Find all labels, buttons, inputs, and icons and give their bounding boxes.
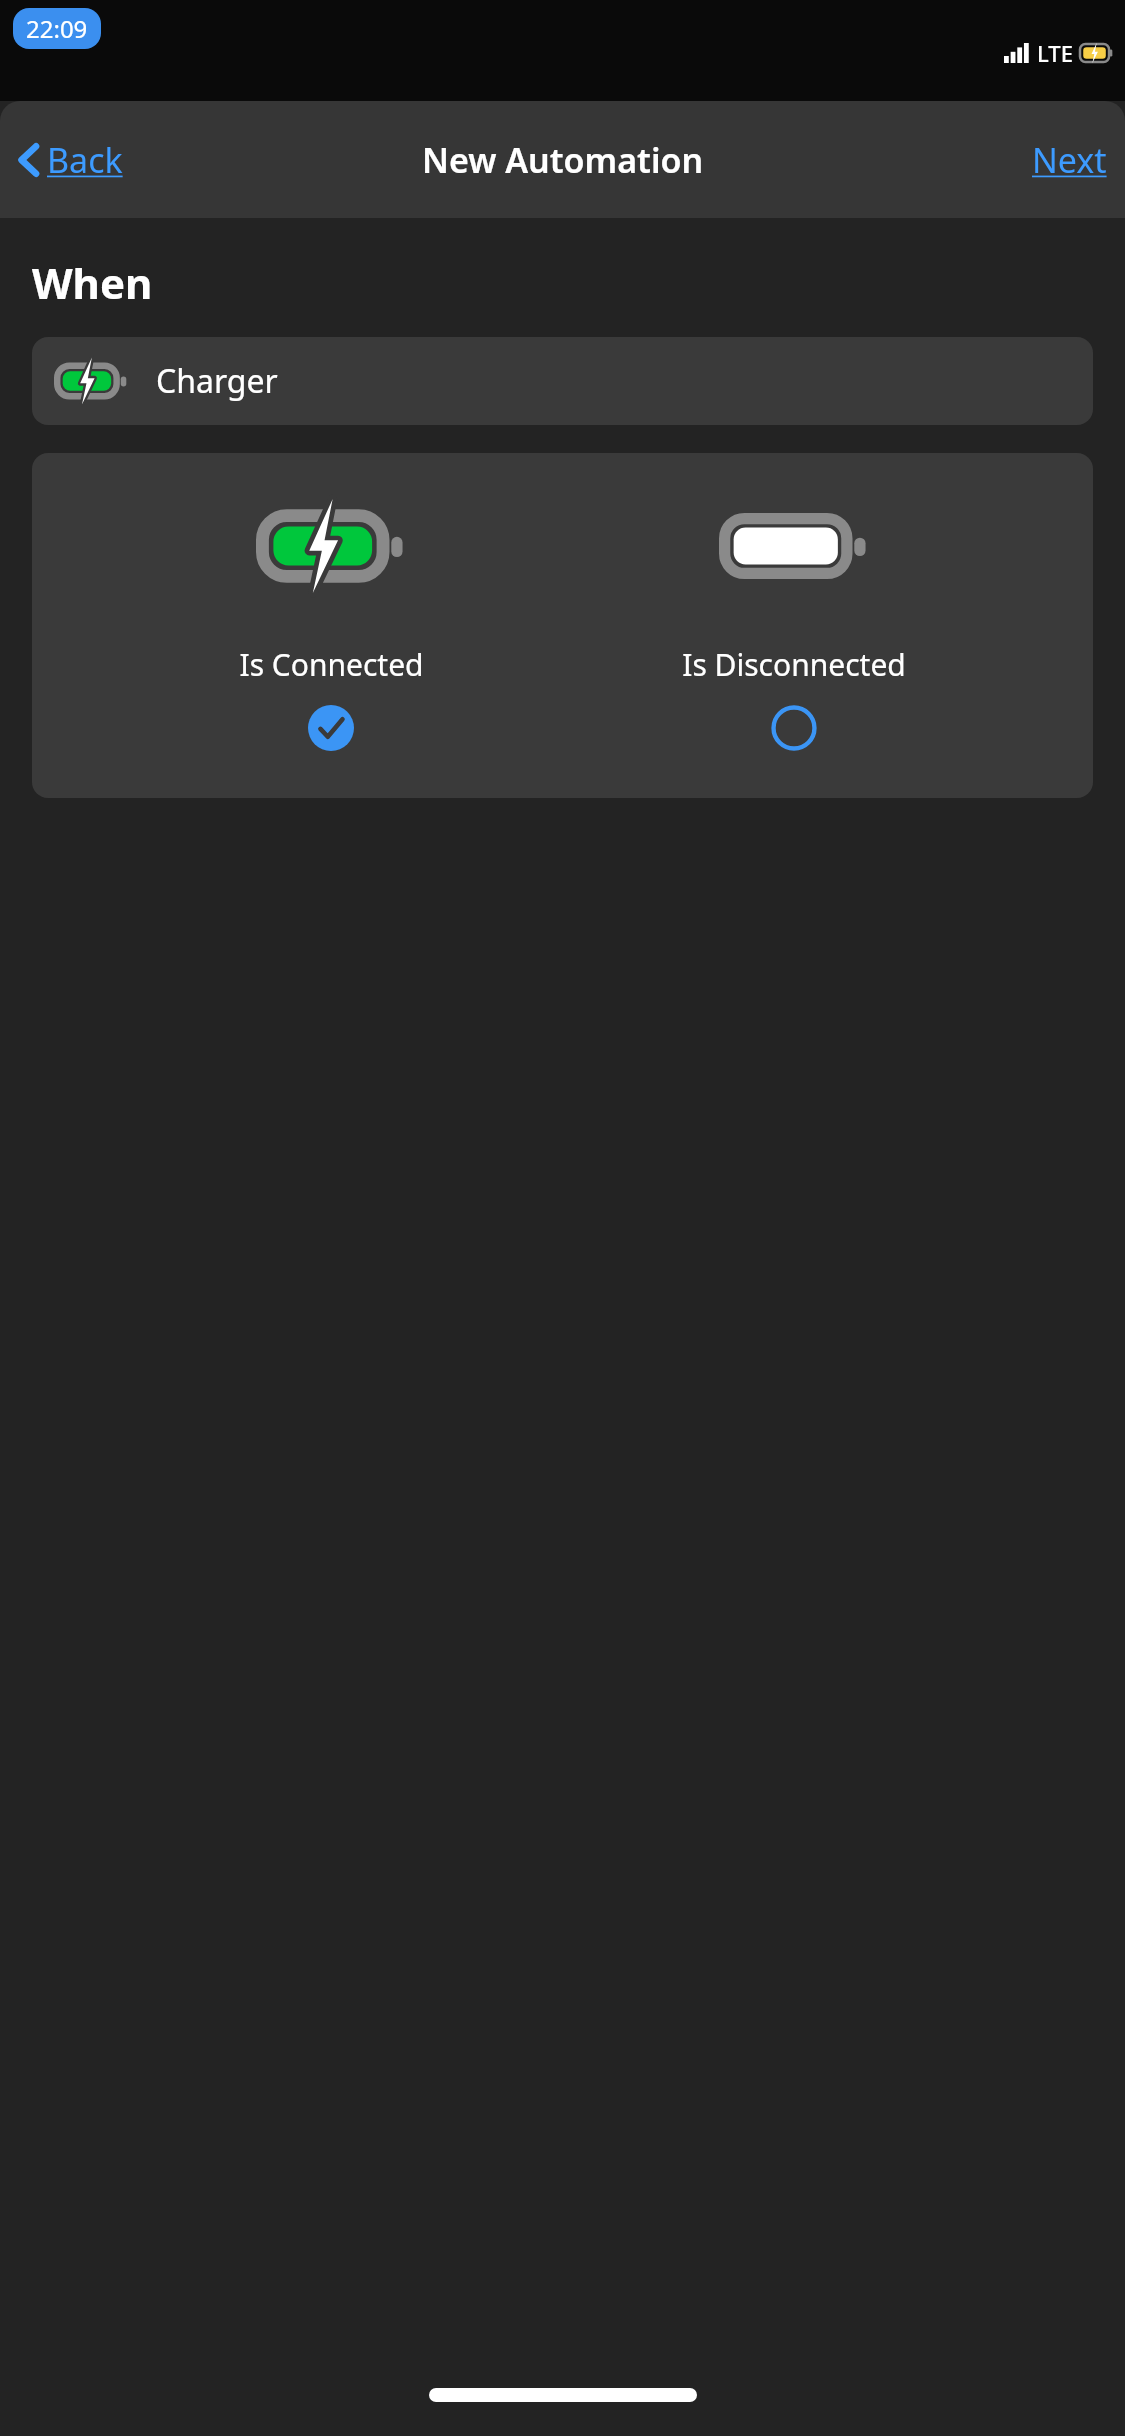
staticText: Back — [47, 137, 123, 183]
staticText: 22:09 — [26, 12, 88, 45]
staticText: New Automation — [422, 137, 704, 183]
button[interactable]: Is Connected — [166, 490, 496, 761]
staticText: Is Connected — [239, 644, 424, 685]
button[interactable]: Is Disconnected — [629, 490, 959, 761]
staticText: LTE — [1037, 38, 1073, 68]
staticText: Is Disconnected — [682, 644, 906, 685]
button[interactable]: Next — [1026, 129, 1113, 191]
button[interactable]: Back — [12, 129, 129, 191]
staticText: Next — [1032, 137, 1107, 183]
staticText: When — [32, 254, 153, 311]
staticText: Charger — [156, 359, 278, 403]
button[interactable]: Charger — [32, 337, 1093, 425]
